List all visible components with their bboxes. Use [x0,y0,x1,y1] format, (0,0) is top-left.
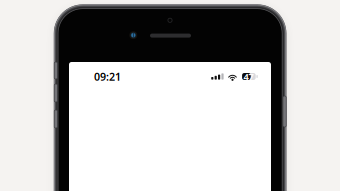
staticText: 47 [243,70,253,83]
staticText: 09:21 [94,69,121,84]
